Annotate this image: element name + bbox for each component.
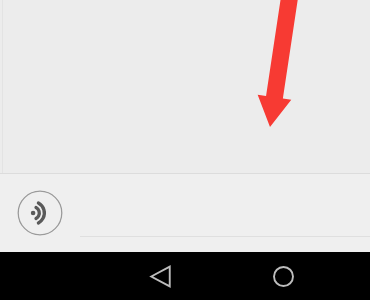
button[interactable]: NFC broadcast <box>17 190 63 236</box>
button[interactable]: Back <box>140 256 180 296</box>
button[interactable]: Home <box>263 256 303 296</box>
